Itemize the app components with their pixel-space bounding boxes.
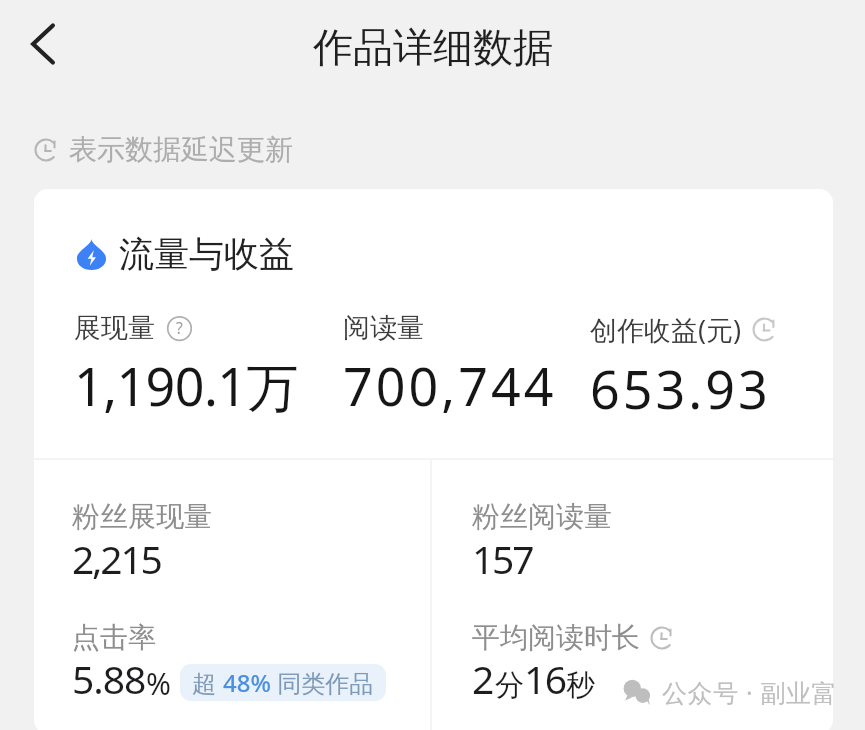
staticText: 表示数据延迟更新: [69, 132, 293, 167]
staticText: 700,744: [343, 350, 557, 421]
button[interactable]: 创作收益(元): [590, 311, 805, 424]
staticText: 粉丝展现量: [72, 499, 212, 534]
staticText: 公众号 · 副业富: [662, 675, 838, 709]
button[interactable]: 粉丝阅读量: [454, 481, 814, 585]
button[interactable]: 平均阅读时长: [454, 602, 814, 720]
button[interactable]: 超: [192, 666, 374, 699]
button[interactable]: 阅读量: [343, 311, 573, 421]
staticText: 48%: [223, 666, 271, 699]
staticText: 点击率: [72, 620, 156, 655]
staticText: 粉丝阅读量: [472, 499, 612, 534]
staticText: 秒: [566, 667, 595, 704]
staticText: 分: [495, 667, 524, 704]
staticText: 2: [472, 652, 495, 705]
staticText: 超: [192, 666, 223, 699]
staticText: 2,215: [72, 532, 161, 583]
staticText: 16: [524, 652, 566, 705]
staticText: 平均阅读时长: [472, 620, 640, 655]
staticText: 作品详细数据: [313, 22, 553, 72]
button[interactable]: 点击率: [54, 602, 414, 720]
staticText: ?: [176, 317, 183, 338]
staticText: 创作收益(元): [590, 311, 742, 348]
staticText: 5.88: [72, 652, 146, 705]
button[interactable]: Back: [14, 15, 72, 73]
staticText: 1,190.1万: [74, 350, 298, 421]
staticText: 同类作品: [271, 666, 374, 699]
staticText: 阅读量: [343, 311, 424, 345]
button[interactable]: 展现量: [74, 311, 324, 421]
button[interactable]: Help: [167, 316, 192, 341]
staticText: 展现量: [74, 311, 155, 345]
other: Delayed data: [650, 626, 674, 650]
staticText: 653.93: [590, 353, 771, 424]
other: Delayed data: [34, 138, 58, 162]
staticText: 流量与收益: [119, 232, 294, 276]
staticText: %: [146, 663, 171, 704]
button[interactable]: 粉丝展现量: [54, 481, 414, 585]
staticText: 157: [472, 532, 533, 583]
other: Delayed data: [752, 317, 777, 342]
